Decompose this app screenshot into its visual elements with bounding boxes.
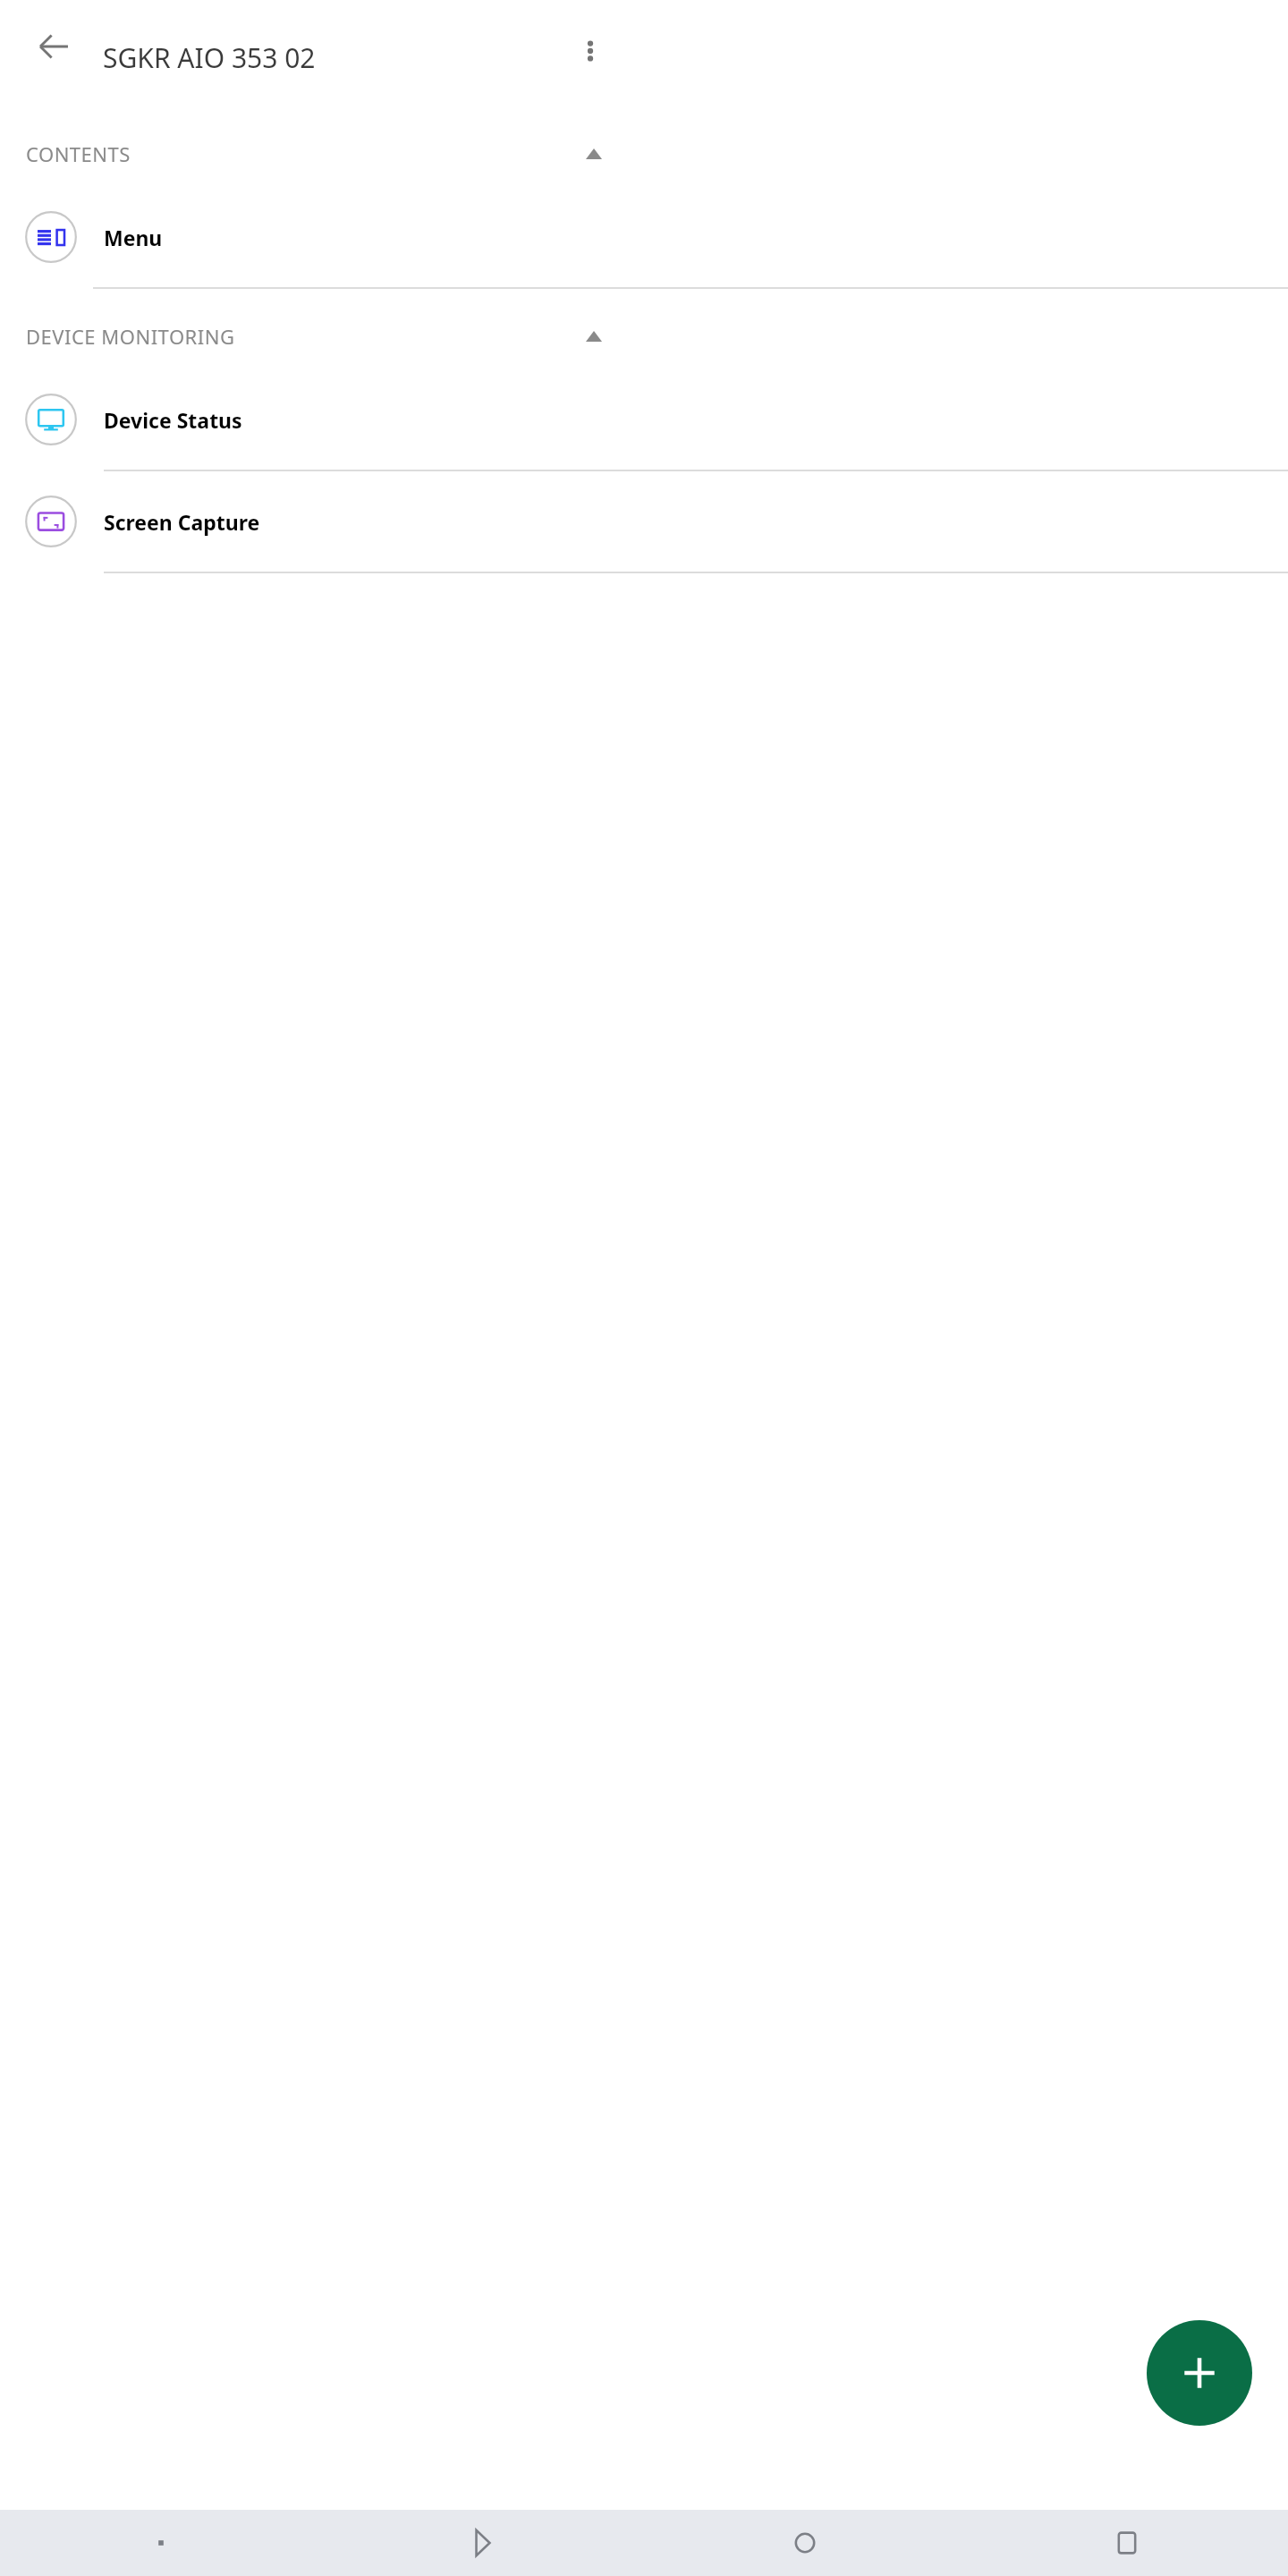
button[interactable]: Back [322,2510,644,2576]
button[interactable]: Recents [966,2510,1288,2576]
button[interactable]: Menu [0,187,1288,287]
staticText: SGKR AIO 353 02 [103,39,316,76]
button[interactable]: More options [559,20,622,82]
button[interactable]: Back [22,15,85,78]
staticText: Screen Capture [104,508,1288,536]
button[interactable]: Hide navigation bar [0,2510,322,2576]
staticText: Device Status [104,406,1288,434]
staticText: CONTENTS [26,140,131,167]
button[interactable]: Device Status [0,369,1288,470]
button[interactable]: Add [1147,2320,1252,2426]
button[interactable]: Home [644,2510,966,2576]
button[interactable]: DEVICE MONITORING [0,303,1288,369]
staticText: DEVICE MONITORING [26,323,235,350]
button[interactable]: Screen Capture [0,471,1288,572]
staticText: Menu [104,224,1288,251]
button[interactable]: CONTENTS [0,121,1288,187]
